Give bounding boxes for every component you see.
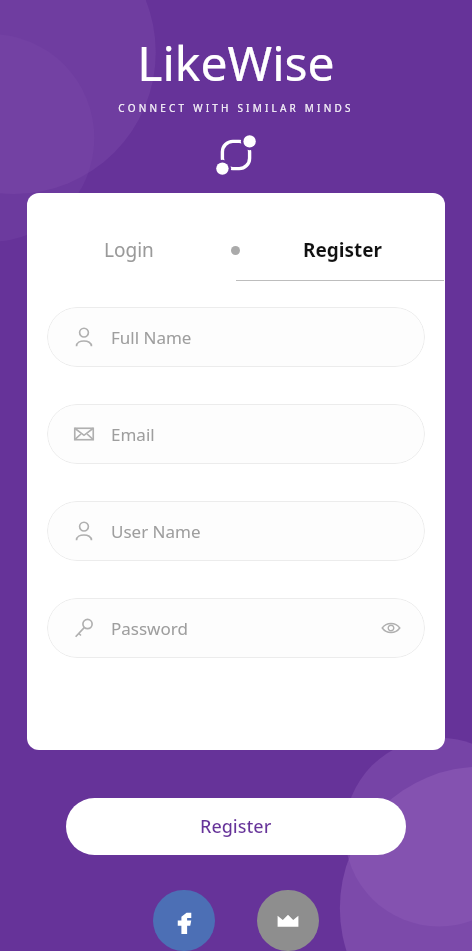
staticText: Login: [104, 237, 154, 263]
button[interactable]: Sign up with another account: [257, 890, 319, 951]
button[interactable]: Register: [66, 798, 406, 855]
staticText: LikeWise: [137, 30, 335, 95]
staticText: CONNECT WITH SIMILAR MINDS: [118, 101, 354, 115]
staticText: User Name: [111, 520, 201, 543]
button[interactable]: Sign up with Facebook: [153, 890, 215, 951]
staticText: Email: [111, 423, 155, 446]
button[interactable]: Show password: [379, 616, 403, 640]
staticText: Password: [111, 617, 188, 640]
button[interactable]: Full Name: [47, 307, 425, 367]
button[interactable]: Register: [240, 237, 445, 263]
button[interactable]: Email: [47, 404, 425, 464]
button[interactable]: Login: [27, 237, 231, 263]
button[interactable]: Password: [47, 598, 425, 658]
staticText: Full Name: [111, 326, 192, 349]
staticText: Register: [200, 814, 272, 839]
staticText: Register: [303, 237, 383, 263]
button[interactable]: User Name: [47, 501, 425, 561]
